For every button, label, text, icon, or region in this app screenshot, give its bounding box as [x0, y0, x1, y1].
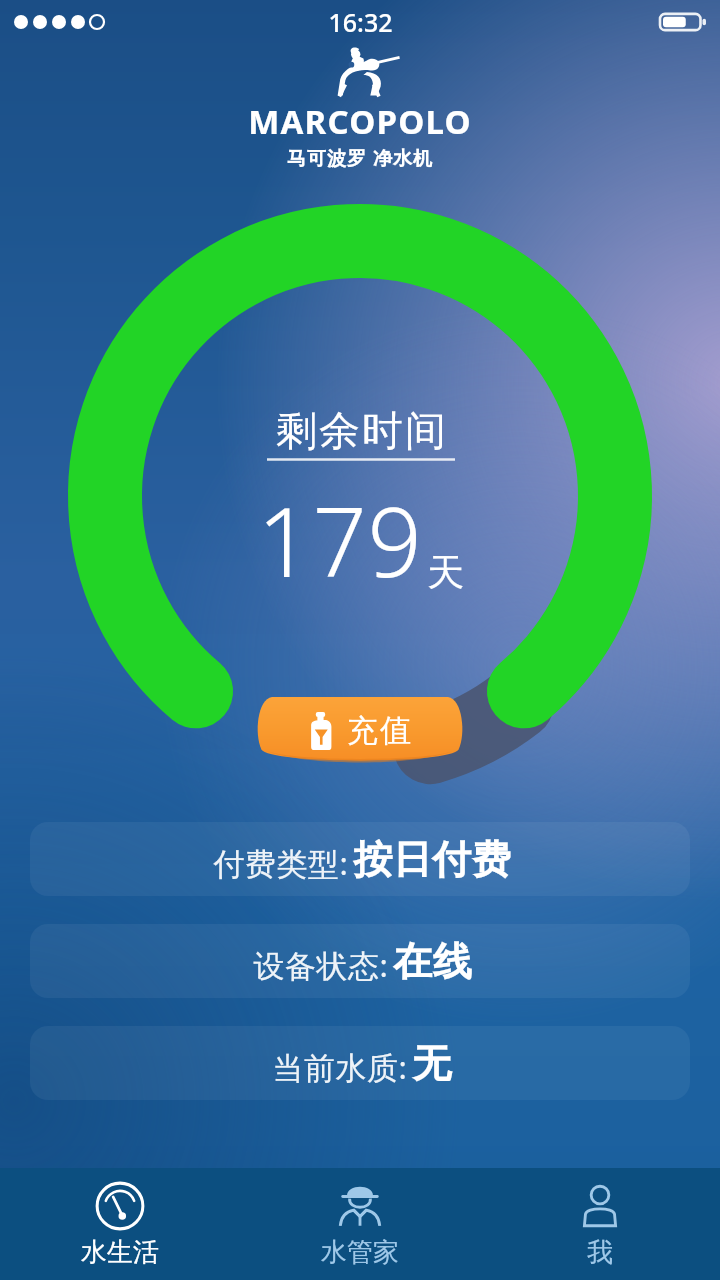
button[interactable]: 充值	[254, 695, 466, 765]
staticText: 按日付费	[353, 835, 511, 884]
staticText: 付费类型:	[209, 842, 353, 884]
button[interactable]: 水生活	[0, 1168, 240, 1280]
staticText: 水生活	[81, 1236, 159, 1269]
staticText: 179	[257, 475, 423, 604]
staticText: 无	[412, 1039, 452, 1088]
staticText: 马可波罗 净水机	[287, 145, 433, 171]
button[interactable]: 当前水质:	[30, 1026, 690, 1100]
staticText: 当前水质:	[268, 1046, 412, 1088]
button[interactable]: 水管家	[240, 1168, 480, 1280]
staticText: 在线	[393, 937, 472, 986]
staticText: 剩余时间	[275, 406, 447, 458]
staticText: MARCOPOLO	[248, 99, 472, 144]
staticText: 设备状态:	[249, 944, 393, 986]
button[interactable]: 我	[480, 1168, 720, 1280]
button[interactable]: 付费类型:	[30, 822, 690, 896]
staticText: 充值	[346, 711, 412, 750]
staticText: 天	[427, 549, 464, 596]
button[interactable]: 设备状态:	[30, 924, 690, 998]
staticText: 水管家	[321, 1236, 399, 1269]
staticText: 我	[587, 1236, 613, 1269]
staticText: 16:32	[328, 5, 393, 39]
